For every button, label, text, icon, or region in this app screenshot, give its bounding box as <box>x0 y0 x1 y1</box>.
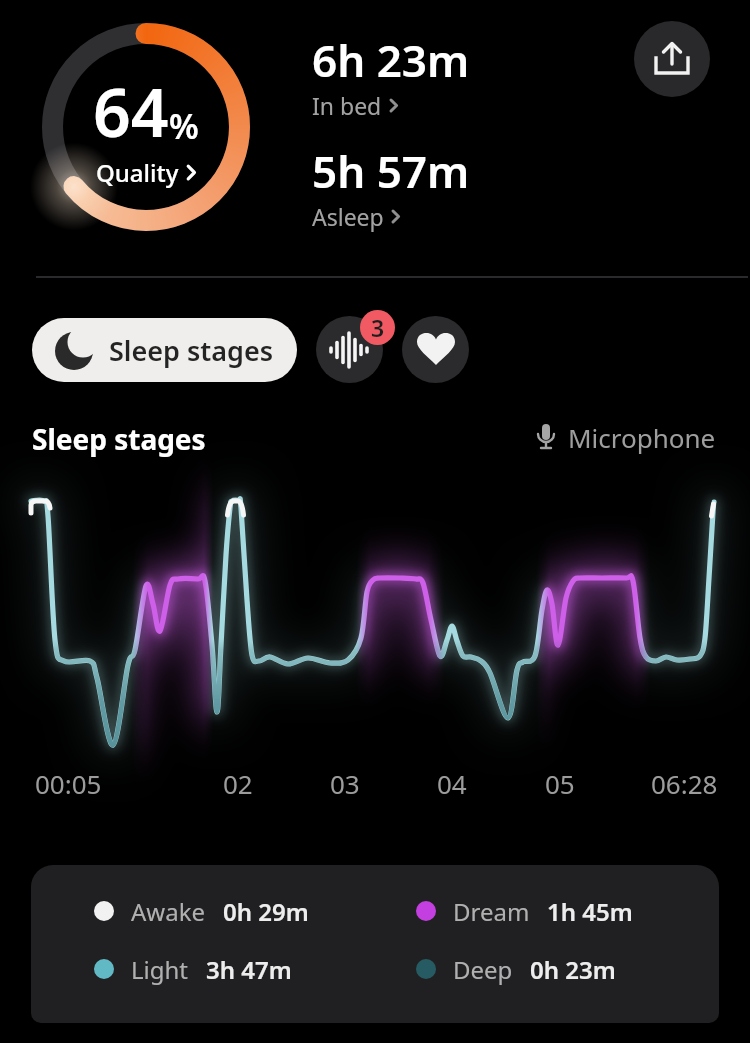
staticText: Light <box>131 953 189 986</box>
staticText: Sleep stages <box>32 420 206 458</box>
staticText: 64 <box>93 66 169 156</box>
staticText: 06:28 <box>651 766 718 801</box>
staticText: Asleep <box>312 201 390 232</box>
staticText: Awake <box>131 895 206 928</box>
staticText: In bed <box>312 90 388 121</box>
staticText: 02 <box>223 766 253 801</box>
staticText: 3h 47m <box>206 953 292 986</box>
staticText: 0h 23m <box>530 953 616 986</box>
staticText: 5h 57m <box>312 141 470 201</box>
button[interactable]: Asleep <box>312 201 401 232</box>
staticText: 6h 23m <box>312 30 470 90</box>
button[interactable]: Sleep stages <box>32 318 297 382</box>
staticText: Quality <box>96 156 185 189</box>
button[interactable]: Awake <box>31 865 719 1023</box>
staticText: Microphone <box>568 420 716 455</box>
staticText: 05 <box>545 766 575 801</box>
staticText: 0h 29m <box>223 895 309 928</box>
button[interactable] <box>634 21 710 97</box>
button[interactable]: Microphone <box>536 420 716 455</box>
button[interactable] <box>402 316 469 383</box>
button[interactable]: 64 <box>93 66 199 189</box>
staticText: Deep <box>453 953 513 986</box>
button[interactable]: In bed <box>312 90 399 121</box>
staticText: 00:05 <box>35 766 102 801</box>
staticText: Sleep stages <box>109 332 274 369</box>
staticText: 1h 45m <box>547 895 633 928</box>
staticText: Dream <box>453 895 530 928</box>
staticText: 03 <box>330 766 360 801</box>
button[interactable] <box>316 316 383 383</box>
staticText: 04 <box>437 766 467 801</box>
staticText: % <box>169 103 199 149</box>
staticText: 3 <box>371 312 385 343</box>
